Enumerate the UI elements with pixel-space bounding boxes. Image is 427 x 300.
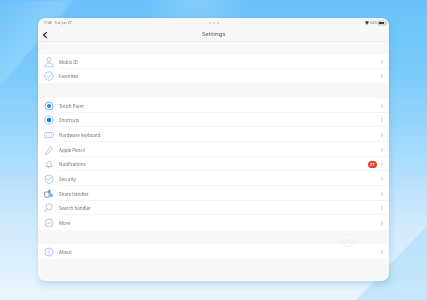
staticText: Security — [59, 176, 76, 182]
staticText: Touch Point — [59, 103, 84, 109]
button[interactable]: More — [38, 215, 389, 230]
staticText: 11:46 Tue Jun 27 — [43, 20, 72, 25]
staticText: Settings — [202, 30, 226, 38]
button[interactable]: Mobix ID — [38, 54, 389, 69]
staticText: About — [59, 249, 72, 255]
button[interactable]: Apple Pencil — [38, 142, 389, 157]
staticText: Notifications — [59, 161, 86, 167]
button[interactable]: Favorites — [38, 69, 389, 83]
staticText: Shortcuts — [59, 117, 80, 123]
staticText: More — [59, 220, 71, 226]
button[interactable]: Notifications — [38, 157, 389, 171]
staticText: Hardware keyboard — [59, 132, 101, 138]
staticText: 77 — [346, 237, 352, 244]
button[interactable]: Hardware keyboard — [38, 127, 389, 142]
staticText: Favorites — [59, 73, 79, 79]
staticText: 64% — [370, 20, 377, 25]
staticText: Apple Pencil — [59, 147, 85, 153]
staticText: Share handler — [59, 191, 89, 197]
button[interactable]: About — [38, 244, 389, 259]
staticText: Search handler — [59, 205, 91, 211]
button[interactable]: Search handler — [38, 201, 389, 215]
button[interactable]: Share handler — [38, 186, 389, 201]
staticText: 77 — [370, 162, 375, 167]
button[interactable]: Shortcuts — [38, 113, 389, 127]
button[interactable]: Security — [38, 171, 389, 186]
button[interactable]: Back — [39, 29, 51, 41]
button[interactable]: Touch Point — [38, 98, 389, 113]
staticText: Mobix ID — [59, 59, 79, 65]
